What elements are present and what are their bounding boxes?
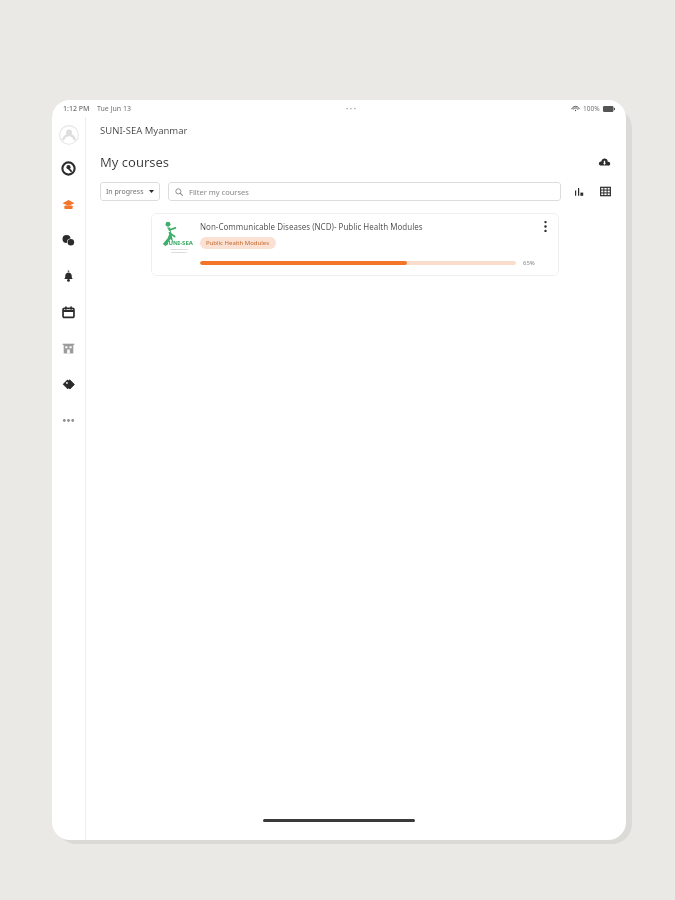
staticText: Public Health Modules bbox=[206, 239, 270, 247]
staticText: • • • bbox=[346, 105, 356, 113]
button[interactable]: More options bbox=[60, 412, 77, 429]
button[interactable]: SUNI-SEA bbox=[151, 213, 559, 276]
staticText: Scaling up NCD Interventions bbox=[163, 247, 195, 253]
staticText: 1:12 PM bbox=[63, 104, 90, 114]
button[interactable]: Site home bbox=[58, 338, 79, 359]
staticText: My courses bbox=[100, 153, 170, 171]
button[interactable]: Sort courses bbox=[570, 183, 587, 200]
button[interactable]: My courses bbox=[58, 194, 79, 215]
button[interactable]: In progress bbox=[100, 182, 160, 201]
button[interactable]: Tags bbox=[58, 374, 79, 395]
button[interactable]: Download course content bbox=[594, 152, 614, 172]
staticText: 100% bbox=[583, 104, 600, 113]
button[interactable]: Calendar bbox=[58, 302, 79, 323]
button[interactable]: Profile bbox=[58, 124, 79, 145]
button[interactable]: Course options bbox=[538, 221, 552, 243]
staticText: SUNI-SEA Myanmar bbox=[100, 124, 188, 137]
staticText: Filter my courses bbox=[189, 187, 249, 197]
staticText: In progress bbox=[106, 187, 144, 197]
staticText: SUNI-SEA bbox=[165, 239, 193, 247]
staticText: Non-Communicable Diseases (NCD)- Public … bbox=[200, 221, 423, 232]
staticText: Tue Jun 13 bbox=[97, 104, 132, 114]
button[interactable]: Grid view bbox=[597, 183, 614, 200]
button[interactable]: Dashboard bbox=[58, 158, 79, 179]
button[interactable]: Filter my courses bbox=[168, 182, 561, 201]
button[interactable]: Notifications bbox=[58, 266, 79, 287]
staticText: 65% bbox=[523, 259, 535, 267]
button[interactable]: Messages bbox=[58, 230, 79, 251]
